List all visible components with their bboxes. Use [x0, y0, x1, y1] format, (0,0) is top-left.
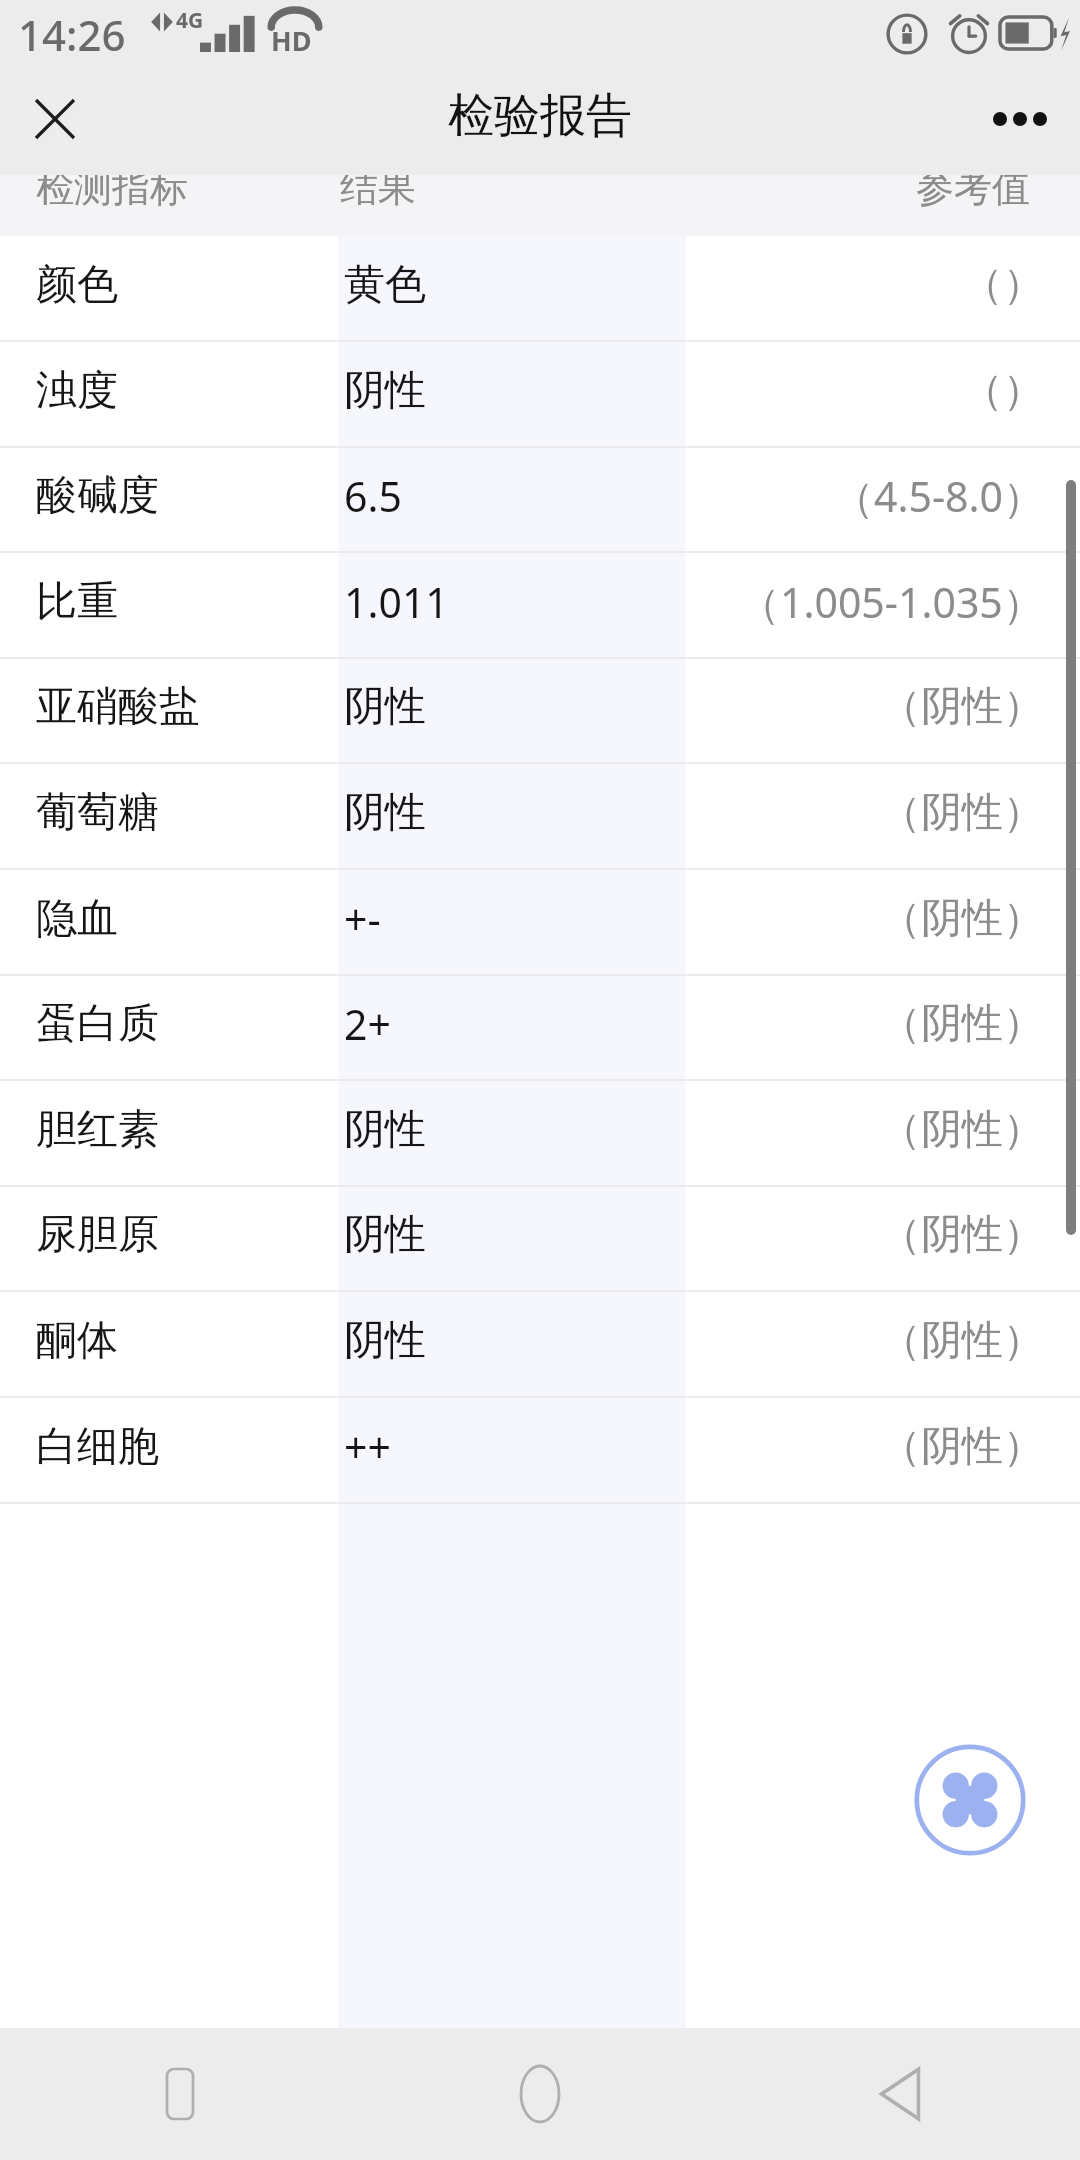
staticText: 1.011 [344, 574, 449, 630]
staticText: 14:26 [18, 6, 126, 63]
staticText: （4.5-8.0） [833, 468, 1044, 524]
button[interactable]: 酮体 [0, 1292, 1080, 1398]
staticText: 参考值 [916, 164, 1030, 212]
staticText: 黄色 [344, 259, 426, 311]
staticText: 结果 [340, 164, 416, 212]
button[interactable]: 隐血 [0, 870, 1080, 976]
button[interactable]: 亚硝酸盐 [0, 658, 1080, 764]
staticText: 白细胞 [36, 1421, 159, 1473]
staticText: （） [962, 365, 1044, 417]
staticText: +- [344, 891, 381, 947]
staticText: （阴性） [880, 1104, 1044, 1156]
button[interactable]: 白细胞 [0, 1398, 1080, 1504]
staticText: （1.005-1.035） [739, 574, 1044, 630]
button[interactable]: Close [19, 83, 91, 155]
staticText: 胆红素 [36, 1104, 159, 1156]
staticText: （阴性） [880, 1315, 1044, 1367]
staticText: （阴性） [880, 1421, 1044, 1473]
button[interactable]: 颜色 [0, 236, 1080, 342]
staticText: 尿胆原 [36, 1209, 159, 1261]
staticText: 2+ [344, 996, 391, 1052]
staticText: 隐血 [36, 893, 118, 945]
staticText: 酸碱度 [36, 470, 159, 522]
button[interactable]: 酸碱度 [0, 447, 1080, 553]
staticText: 阴性 [344, 365, 426, 417]
staticText: 阴性 [344, 1315, 426, 1367]
button[interactable]: Recents [0, 2028, 360, 2160]
button[interactable]: Home [360, 2028, 720, 2160]
staticText: （阴性） [880, 787, 1044, 839]
staticText: 葡萄糖 [36, 787, 159, 839]
staticText: 比重 [36, 576, 118, 628]
staticText: 蛋白质 [36, 998, 159, 1050]
button[interactable]: 浊度 [0, 342, 1080, 448]
button[interactable]: 葡萄糖 [0, 764, 1080, 870]
staticText: 浊度 [36, 365, 118, 417]
staticText: 颜色 [36, 259, 118, 311]
staticText: （） [962, 259, 1044, 311]
staticText: 阴性 [344, 787, 426, 839]
staticText: （阴性） [880, 1209, 1044, 1261]
staticText: HD [271, 22, 312, 59]
button[interactable]: 比重 [0, 553, 1080, 659]
button[interactable]: Assistive touch [914, 1744, 1026, 1856]
staticText: 检验报告 [448, 87, 632, 145]
staticText: ++ [344, 1419, 391, 1475]
button[interactable]: More options [980, 79, 1060, 159]
staticText: 6.5 [344, 468, 402, 524]
button[interactable]: 胆红素 [0, 1081, 1080, 1187]
staticText: 酮体 [36, 1315, 118, 1367]
staticText: 阴性 [344, 1104, 426, 1156]
staticText: （阴性） [880, 998, 1044, 1050]
staticText: 亚硝酸盐 [36, 681, 200, 733]
staticText: 检测指标 [36, 164, 188, 212]
staticText: （阴性） [880, 681, 1044, 733]
staticText: 4G [176, 6, 204, 35]
button[interactable]: 尿胆原 [0, 1186, 1080, 1292]
staticText: 阴性 [344, 1209, 426, 1261]
staticText: 阴性 [344, 681, 426, 733]
staticText: （阴性） [880, 893, 1044, 945]
button[interactable]: 蛋白质 [0, 975, 1080, 1081]
button[interactable]: Back [720, 2028, 1080, 2160]
